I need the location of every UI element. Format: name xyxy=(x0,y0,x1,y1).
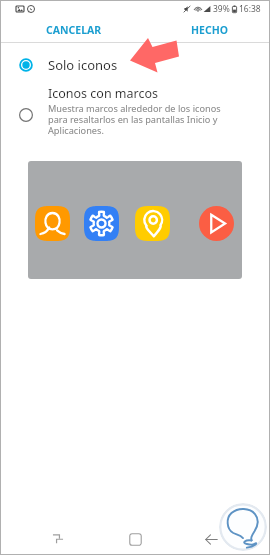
staticText: 39% xyxy=(213,3,230,15)
staticText: Solo iconos xyxy=(48,56,118,74)
button[interactable]: Solo iconos xyxy=(0,49,270,81)
button[interactable]: Bixby xyxy=(219,503,267,551)
staticText: HECHO xyxy=(191,23,228,37)
button[interactable]: Recents xyxy=(0,509,270,555)
button[interactable]: Home xyxy=(113,521,157,555)
staticText: Iconos con marcos xyxy=(48,85,159,102)
staticText: Muestra marcos alrededor de los iconos p… xyxy=(48,102,230,136)
button[interactable]: Back xyxy=(189,521,233,555)
button[interactable]: CANCELAR xyxy=(0,19,114,41)
button[interactable]: Iconos con marcos xyxy=(0,81,270,136)
button[interactable]: HECHO xyxy=(179,19,270,41)
staticText: CANCELAR xyxy=(46,23,102,37)
staticText: 16:38 xyxy=(239,3,261,15)
